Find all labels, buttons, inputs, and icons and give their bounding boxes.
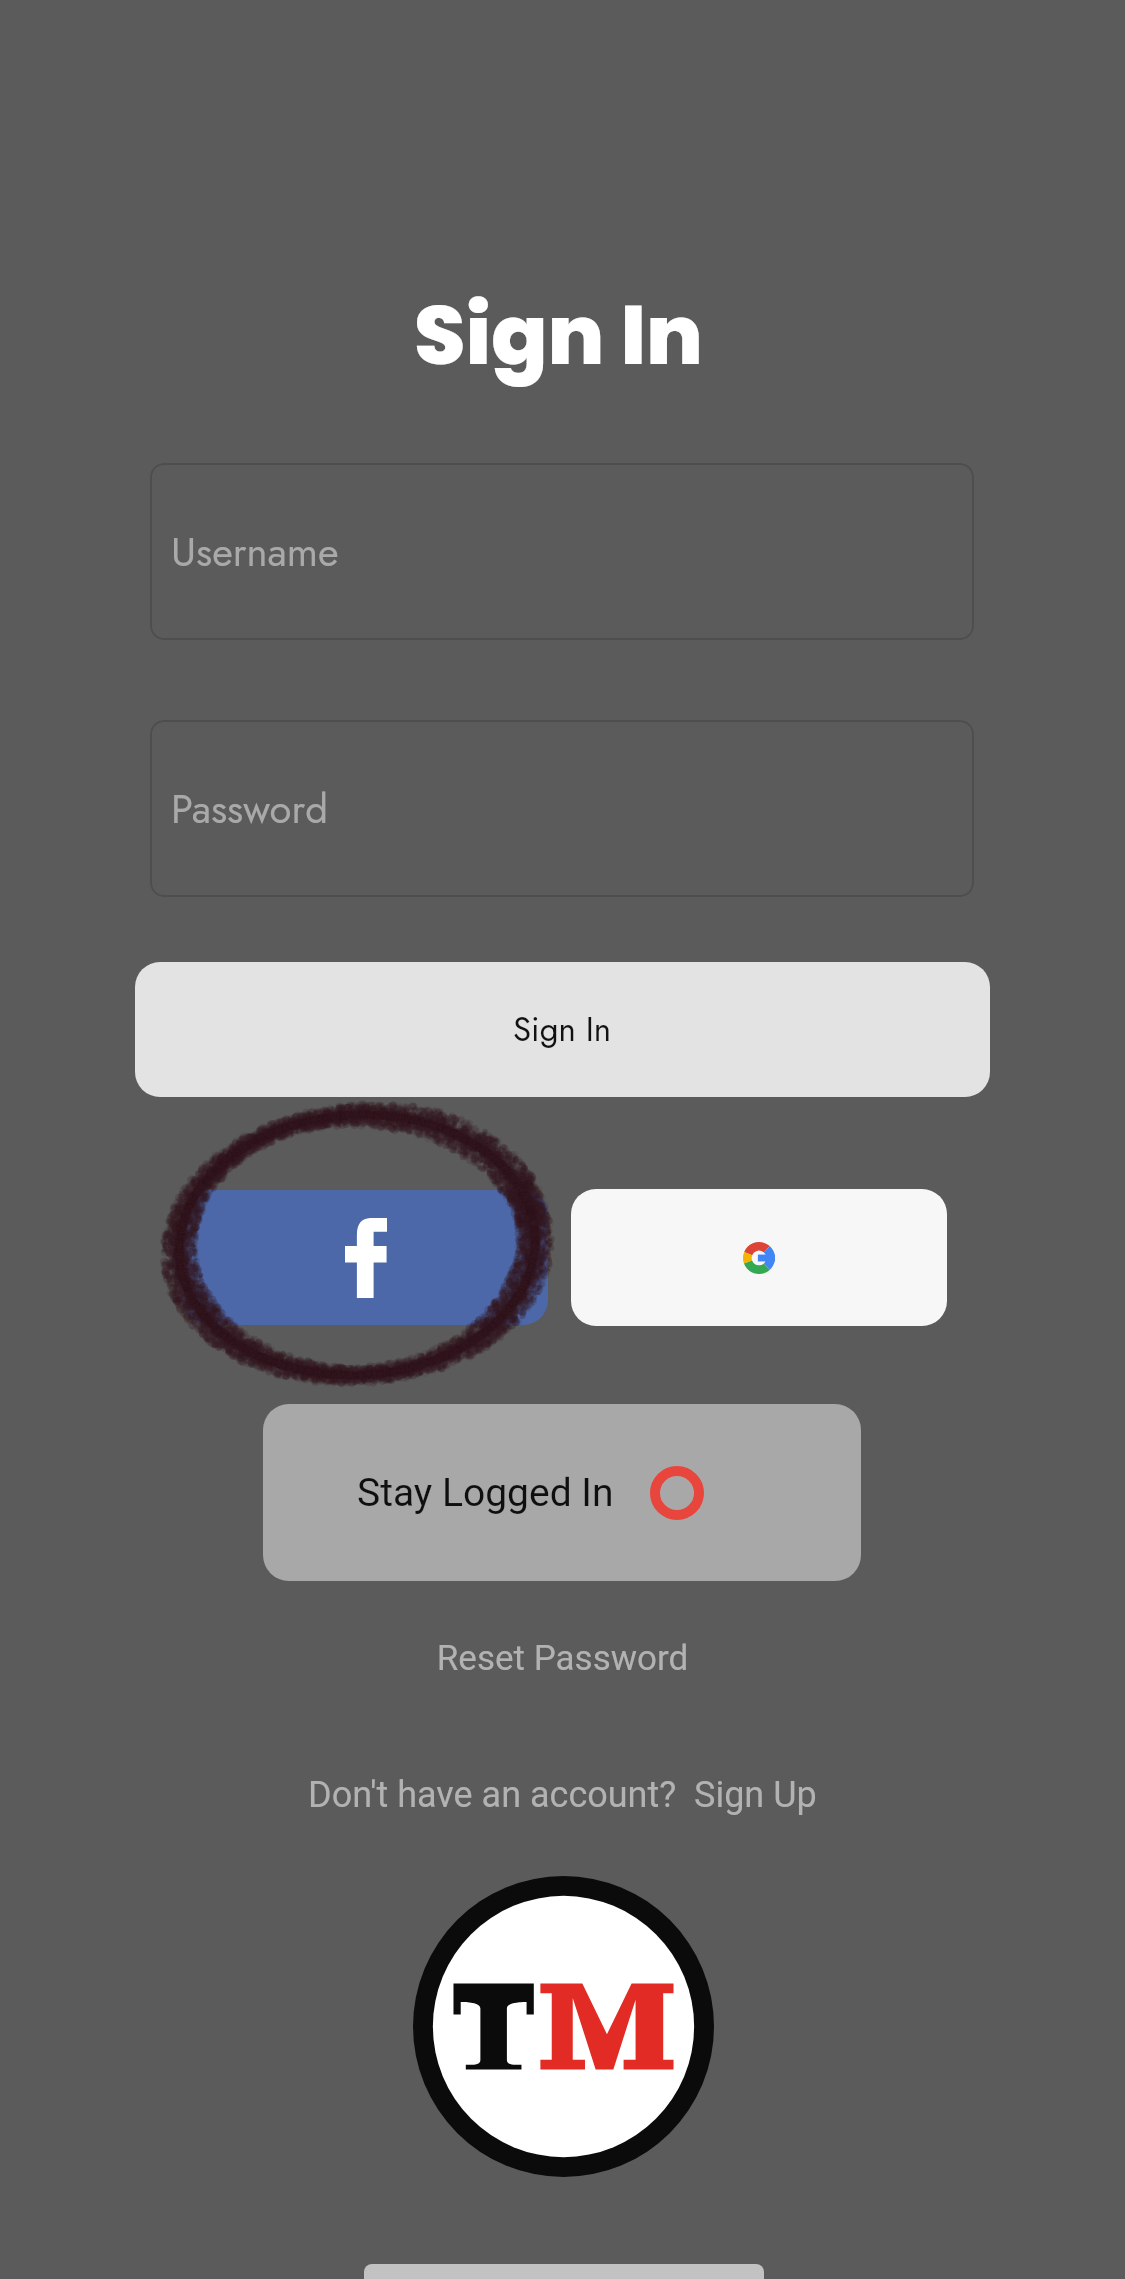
staticText: Password (171, 780, 328, 838)
button[interactable]: Password (150, 720, 974, 897)
staticText: Sign In (0, 277, 1121, 393)
button[interactable]: Stay Logged In (263, 1404, 861, 1581)
button[interactable]: Username (150, 463, 974, 640)
staticText: Don't have an account? (308, 1774, 677, 1816)
button[interactable]: Reset Password (0, 1638, 1125, 1679)
button[interactable]: Sign in with Google (571, 1189, 947, 1326)
button[interactable]: Sign In (135, 962, 990, 1097)
staticText: Username (171, 523, 339, 581)
staticText: Stay Logged In (357, 1470, 614, 1516)
button[interactable]: Sign Up (694, 1774, 817, 1816)
button[interactable]: Sign in with Facebook (184, 1190, 548, 1325)
staticText: Sign In (513, 1006, 612, 1054)
